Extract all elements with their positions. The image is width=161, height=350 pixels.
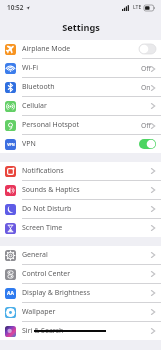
- button[interactable]: Notifications: [0, 162, 161, 180]
- button[interactable]: Wallpaper: [0, 303, 161, 321]
- button[interactable]: Personal Hotspot: [0, 116, 161, 134]
- staticText: Screen Time: [22, 223, 63, 233]
- staticText: Control Center: [22, 269, 71, 279]
- staticText: Settings: [62, 21, 100, 34]
- staticText: Bluetooth: [22, 82, 55, 92]
- button[interactable]: Airplane Mode: [0, 40, 161, 58]
- staticText: Display & Brightness: [22, 288, 91, 298]
- staticText: AA: [7, 290, 14, 297]
- button[interactable]: VPN: [0, 135, 161, 153]
- button[interactable]: AA: [0, 284, 161, 302]
- staticText: Siri & Search: [22, 326, 64, 336]
- button[interactable]: Siri & Search: [0, 322, 161, 340]
- button[interactable]: General: [0, 246, 161, 264]
- staticText: VPN: [7, 142, 15, 147]
- staticText: VPN: [22, 139, 36, 149]
- button[interactable]: Bluetooth: [0, 78, 161, 96]
- staticText: Airplane Mode: [22, 44, 71, 54]
- staticText: General: [22, 250, 48, 260]
- button[interactable]: Sounds & Haptics: [0, 181, 161, 199]
- button[interactable]: Wi-Fi: [0, 59, 161, 77]
- staticText: Off: [141, 64, 151, 73]
- staticText: On: [141, 83, 151, 92]
- staticText: 10:52: [7, 3, 24, 12]
- button[interactable]: Do Not Disturb: [0, 200, 161, 218]
- staticText: Wallpaper: [22, 307, 56, 317]
- staticText: Sounds & Haptics: [22, 185, 80, 195]
- button[interactable]: Screen Time: [0, 219, 161, 237]
- button[interactable]: Cellular: [0, 97, 161, 115]
- staticText: LTE: [133, 4, 142, 11]
- staticText: Do Not Disturb: [22, 204, 72, 214]
- staticText: Cellular: [22, 101, 47, 111]
- staticText: Wi-Fi: [22, 63, 39, 73]
- staticText: Personal Hotspot: [22, 120, 79, 130]
- staticText: Off: [141, 121, 151, 130]
- button[interactable]: Control Center: [0, 265, 161, 283]
- staticText: Notifications: [22, 166, 64, 176]
